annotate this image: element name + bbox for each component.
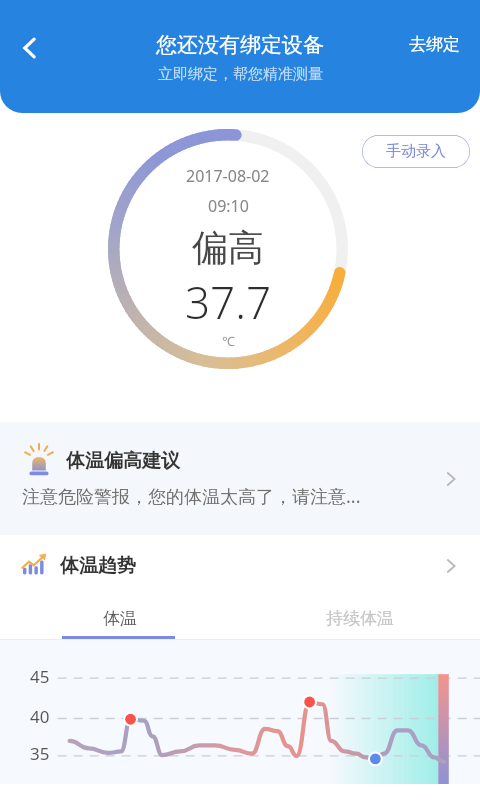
- button[interactable]: Back: [4, 22, 56, 74]
- button[interactable]: 体温趋势: [0, 535, 480, 597]
- staticText: 去绑定: [409, 34, 460, 55]
- staticText: 40: [30, 705, 50, 728]
- staticText: ℃: [222, 332, 235, 350]
- staticText: 09:10: [208, 195, 249, 217]
- staticText: 35: [30, 742, 50, 765]
- staticText: 偏高: [192, 225, 264, 270]
- staticText: 体温: [103, 608, 137, 629]
- staticText: 注意危险警报，您的体温太高了，请注意...: [22, 484, 361, 509]
- staticText: 37.7: [185, 272, 272, 332]
- staticText: 立即绑定，帮您精准测量: [158, 65, 323, 84]
- staticText: 2017-08-02: [186, 165, 270, 187]
- button[interactable]: 体温偏高建议: [0, 422, 480, 535]
- staticText: 手动录入: [386, 142, 446, 161]
- staticText: 体温偏高建议: [66, 449, 180, 473]
- button[interactable]: 手动录入: [362, 135, 470, 168]
- button[interactable]: 去绑定: [397, 28, 472, 61]
- staticText: 体温趋势: [60, 554, 136, 578]
- staticText: 45: [30, 665, 50, 688]
- button[interactable]: 体温: [0, 597, 240, 639]
- button[interactable]: 持续体温: [240, 597, 480, 639]
- staticText: 您还没有绑定设备: [156, 32, 324, 58]
- staticText: 持续体温: [326, 608, 394, 629]
